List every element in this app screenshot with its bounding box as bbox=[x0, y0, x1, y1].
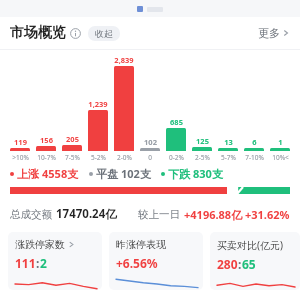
staticText: 收起 bbox=[95, 28, 113, 39]
button[interactable]: 更多 bbox=[258, 22, 290, 44]
staticText: 111 bbox=[15, 255, 36, 271]
button[interactable]: 涨跌停家数 bbox=[8, 232, 102, 290]
button[interactable]: 买卖对比(亿元) bbox=[210, 232, 300, 290]
staticText: 0-2% bbox=[169, 153, 184, 162]
staticText: 涨跌停家数 bbox=[15, 238, 65, 251]
staticText: 119 bbox=[14, 137, 27, 147]
staticText: 65 bbox=[242, 256, 256, 272]
button[interactable]: 昨涨停表现 bbox=[109, 232, 203, 290]
staticText: 买卖对比(亿元) bbox=[217, 238, 283, 252]
staticText: 2 bbox=[40, 255, 47, 271]
staticText: 1 bbox=[278, 137, 283, 147]
staticText: 5-7% bbox=[221, 153, 236, 162]
staticText: 102 bbox=[144, 137, 157, 147]
staticText: 10%< bbox=[272, 153, 289, 162]
staticText: 5-2% bbox=[91, 153, 106, 162]
staticText: 2,839 bbox=[114, 55, 134, 65]
staticText: 102支 bbox=[121, 166, 151, 181]
staticText: 205 bbox=[66, 134, 79, 144]
staticText: 昨涨停表现 bbox=[116, 238, 166, 251]
staticText: 13 bbox=[224, 137, 233, 147]
staticText: 总成交额 bbox=[10, 208, 52, 221]
staticText: >10% bbox=[12, 153, 29, 162]
button[interactable]: 收起 bbox=[88, 26, 120, 41]
staticText: +6.56% bbox=[116, 255, 158, 271]
staticText: 156 bbox=[40, 135, 53, 145]
staticText: 2-5% bbox=[195, 153, 210, 162]
staticText: 1,239 bbox=[88, 99, 108, 109]
staticText: : bbox=[36, 255, 40, 271]
staticText: 平盘 bbox=[96, 167, 118, 181]
staticText: 6 bbox=[252, 137, 257, 147]
button[interactable]: Info bbox=[70, 28, 81, 39]
staticText: 10-7% bbox=[37, 153, 56, 162]
staticText: 7-5% bbox=[65, 153, 80, 162]
staticText: 7-10% bbox=[245, 153, 264, 162]
staticText: 830支 bbox=[193, 166, 223, 181]
staticText: 下跌 bbox=[168, 167, 190, 181]
staticText: 更多 bbox=[258, 26, 280, 40]
staticText: 4558支 bbox=[42, 166, 79, 181]
staticText: 2-0% bbox=[117, 153, 132, 162]
staticText: 上涨 bbox=[17, 167, 39, 181]
staticText: 280 bbox=[217, 256, 238, 272]
staticText: 0 bbox=[148, 153, 152, 162]
staticText: 125 bbox=[196, 136, 209, 146]
staticText: +4196.88亿 +31.62% bbox=[184, 207, 290, 222]
staticText: 市场概览 bbox=[10, 24, 66, 42]
staticText: : bbox=[238, 256, 242, 272]
staticText: 685 bbox=[170, 117, 183, 127]
staticText: 较上一日 bbox=[138, 208, 180, 221]
staticText: 17470.24亿 bbox=[56, 206, 117, 222]
